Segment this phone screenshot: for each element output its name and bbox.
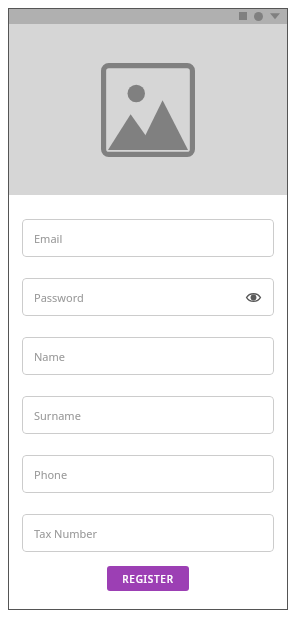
button[interactable]: Name — [22, 337, 274, 375]
staticText: Phone — [34, 467, 68, 482]
button[interactable]: REGISTER — [107, 566, 189, 591]
button[interactable]: Email — [22, 219, 274, 257]
button[interactable]: Tax Number — [22, 514, 274, 552]
button[interactable]: Surname — [22, 396, 274, 434]
staticText: Tax Number — [34, 526, 98, 541]
staticText: Password — [34, 290, 84, 305]
staticText: REGISTER — [122, 572, 174, 586]
button[interactable]: Password — [22, 278, 274, 316]
staticText: Email — [34, 231, 63, 246]
staticText: Name — [34, 349, 66, 364]
button[interactable]: Show password — [244, 288, 262, 306]
button[interactable]: Profile photo placeholder — [101, 63, 195, 157]
staticText: Surname — [34, 408, 81, 423]
button[interactable]: Phone — [22, 455, 274, 493]
